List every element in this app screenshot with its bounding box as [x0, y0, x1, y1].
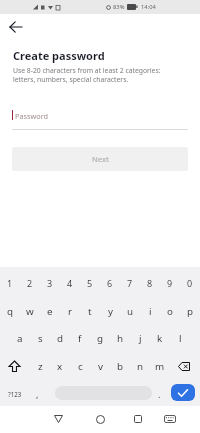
- button[interactable]: n: [130, 357, 150, 375]
- button[interactable]: f: [70, 329, 90, 347]
- button[interactable]: p: [180, 302, 200, 320]
- button[interactable]: 2: [20, 274, 40, 292]
- button[interactable]: ,: [28, 384, 46, 403]
- staticText: .: [158, 388, 161, 400]
- staticText: 0: [187, 277, 193, 289]
- staticText: ,: [36, 388, 39, 400]
- button[interactable]: 4: [60, 274, 80, 292]
- staticText: m: [155, 360, 165, 373]
- button[interactable]: [6, 17, 26, 37]
- button[interactable]: g: [90, 329, 110, 347]
- button[interactable]: b: [110, 357, 130, 375]
- button[interactable]: t: [80, 302, 100, 320]
- staticText: 3: [47, 277, 53, 289]
- staticText: r: [68, 305, 73, 318]
- staticText: q: [7, 305, 14, 318]
- staticText: j: [139, 332, 142, 345]
- staticText: 7: [127, 277, 133, 289]
- staticText: u: [127, 305, 134, 318]
- staticText: h: [117, 332, 124, 345]
- button[interactable]: [171, 384, 195, 401]
- staticText: 2: [27, 277, 33, 289]
- staticText: 14:04: [141, 3, 156, 11]
- staticText: e: [47, 305, 53, 318]
- staticText: c: [78, 360, 83, 373]
- staticText: Next: [92, 154, 109, 164]
- button[interactable]: x: [50, 357, 70, 375]
- staticText: w: [26, 305, 34, 318]
- button[interactable]: e: [40, 302, 60, 320]
- staticText: 8: [147, 277, 153, 289]
- button[interactable]: u: [120, 302, 140, 320]
- staticText: v: [98, 360, 103, 373]
- button[interactable]: 6: [100, 274, 120, 292]
- staticText: b: [117, 360, 124, 373]
- button[interactable]: [158, 408, 182, 430]
- staticText: t: [88, 305, 92, 318]
- staticText: i: [149, 305, 152, 318]
- staticText: s: [38, 332, 43, 345]
- button[interactable]: q: [0, 302, 20, 320]
- button[interactable]: m: [150, 357, 170, 375]
- staticText: 9: [167, 277, 173, 289]
- button[interactable]: j: [130, 329, 150, 347]
- staticText: y: [108, 305, 113, 318]
- button[interactable]: [172, 357, 196, 375]
- button[interactable]: Password: [12, 108, 188, 130]
- button[interactable]: s: [30, 329, 50, 347]
- button[interactable]: .: [152, 384, 166, 403]
- staticText: Password: [15, 111, 49, 121]
- button[interactable]: v: [90, 357, 110, 375]
- staticText: n: [137, 360, 144, 373]
- button[interactable]: 7: [120, 274, 140, 292]
- button[interactable]: a: [10, 329, 30, 347]
- button[interactable]: 1: [0, 274, 20, 292]
- button[interactable]: o: [160, 302, 180, 320]
- staticText: 83%: [113, 3, 125, 11]
- staticText: o: [167, 305, 173, 318]
- staticText: ?123: [8, 390, 22, 398]
- staticText: 1: [7, 277, 13, 289]
- button[interactable]: z: [30, 357, 50, 375]
- staticText: 6: [107, 277, 113, 289]
- button[interactable]: [2, 357, 26, 375]
- staticText: 4: [67, 277, 73, 289]
- button[interactable]: [88, 408, 112, 430]
- staticText: l: [179, 332, 182, 345]
- button[interactable]: d: [50, 329, 70, 347]
- staticText: a: [17, 332, 23, 345]
- button[interactable]: 3: [40, 274, 60, 292]
- staticText: Create password: [13, 48, 105, 63]
- button[interactable]: 9: [160, 274, 180, 292]
- staticText: d: [57, 332, 64, 345]
- button[interactable]: h: [110, 329, 130, 347]
- staticText: 5: [87, 277, 93, 289]
- button[interactable]: 5: [80, 274, 100, 292]
- button[interactable]: c: [70, 357, 90, 375]
- button[interactable]: [46, 408, 70, 430]
- button[interactable]: r: [60, 302, 80, 320]
- button[interactable]: 0: [180, 274, 200, 292]
- staticText: g: [97, 332, 104, 345]
- button[interactable]: ?123: [2, 384, 28, 403]
- button[interactable]: l: [170, 329, 190, 347]
- button[interactable]: [126, 408, 150, 430]
- staticText: z: [38, 360, 43, 373]
- staticText: k: [157, 332, 163, 345]
- staticText: x: [57, 360, 63, 373]
- button[interactable]: y: [100, 302, 120, 320]
- button[interactable]: i: [140, 302, 160, 320]
- button[interactable]: w: [20, 302, 40, 320]
- staticText: f: [78, 332, 82, 345]
- button[interactable]: 8: [140, 274, 160, 292]
- staticText: Use 8-20 characters from at least 2 cate…: [13, 66, 161, 84]
- button[interactable]: k: [150, 329, 170, 347]
- button[interactable]: Next: [12, 147, 188, 171]
- staticText: p: [187, 305, 194, 318]
